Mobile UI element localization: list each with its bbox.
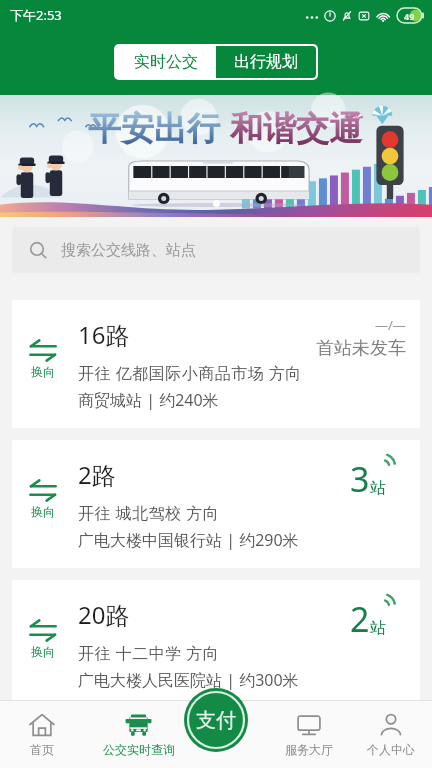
staticText: 49 xyxy=(404,10,415,22)
staticText: 广电大楼中国银行站 | 约290米 xyxy=(78,529,299,551)
staticText: —/— xyxy=(375,316,406,334)
staticText: 开往 城北驾校 方向 xyxy=(78,502,220,524)
staticText: 支付 xyxy=(196,708,236,733)
button[interactable]: Service xyxy=(268,701,350,768)
button[interactable]: Home xyxy=(0,701,83,768)
button[interactable]: 搜索公交线路、站点 xyxy=(12,227,420,273)
button[interactable]: Profile xyxy=(350,701,432,768)
staticText: 站 xyxy=(370,478,386,498)
staticText: 3 xyxy=(350,456,370,502)
staticText: 出行规划 xyxy=(234,52,298,72)
button[interactable]: 换向 xyxy=(12,440,420,568)
staticText: 2 xyxy=(350,596,370,642)
button[interactable]: 实时公交 xyxy=(116,46,216,78)
button[interactable]: 换向 xyxy=(12,300,420,428)
staticText: 首站未发车 xyxy=(316,337,406,360)
staticText: 换向 xyxy=(31,644,55,659)
staticText: 2路 xyxy=(78,458,116,491)
staticText: 换向 xyxy=(31,504,55,519)
button[interactable]: 换向 xyxy=(12,580,420,708)
staticText: 20路 xyxy=(78,598,130,631)
staticText: 站 xyxy=(370,618,386,638)
button[interactable]: Bus xyxy=(83,701,194,768)
staticText: 16路 xyxy=(78,318,130,351)
staticText: 和谐交通 xyxy=(230,108,362,150)
staticText: 开往 亿都国际小商品市场 方向 xyxy=(78,362,302,384)
staticText: 公交实时查询 xyxy=(103,742,175,757)
staticText: 下午2:53 xyxy=(10,6,62,24)
staticText: 广电大楼人民医院站 | 约300米 xyxy=(78,669,299,691)
staticText: 平安出行 xyxy=(88,108,220,150)
button[interactable]: 支付 xyxy=(184,688,248,752)
staticText: 首页 xyxy=(30,742,54,757)
staticText: 搜索公交线路、站点 xyxy=(61,241,196,260)
staticText: 换向 xyxy=(31,364,55,379)
staticText: 个人中心 xyxy=(367,742,415,757)
staticText: 实时公交 xyxy=(134,52,198,72)
button[interactable]: 出行规划 xyxy=(216,46,316,78)
staticText: 开往 十二中学 方向 xyxy=(78,642,220,664)
staticText: 服务大厅 xyxy=(285,742,333,757)
staticText: 商贸城站 | 约240米 xyxy=(78,389,219,411)
